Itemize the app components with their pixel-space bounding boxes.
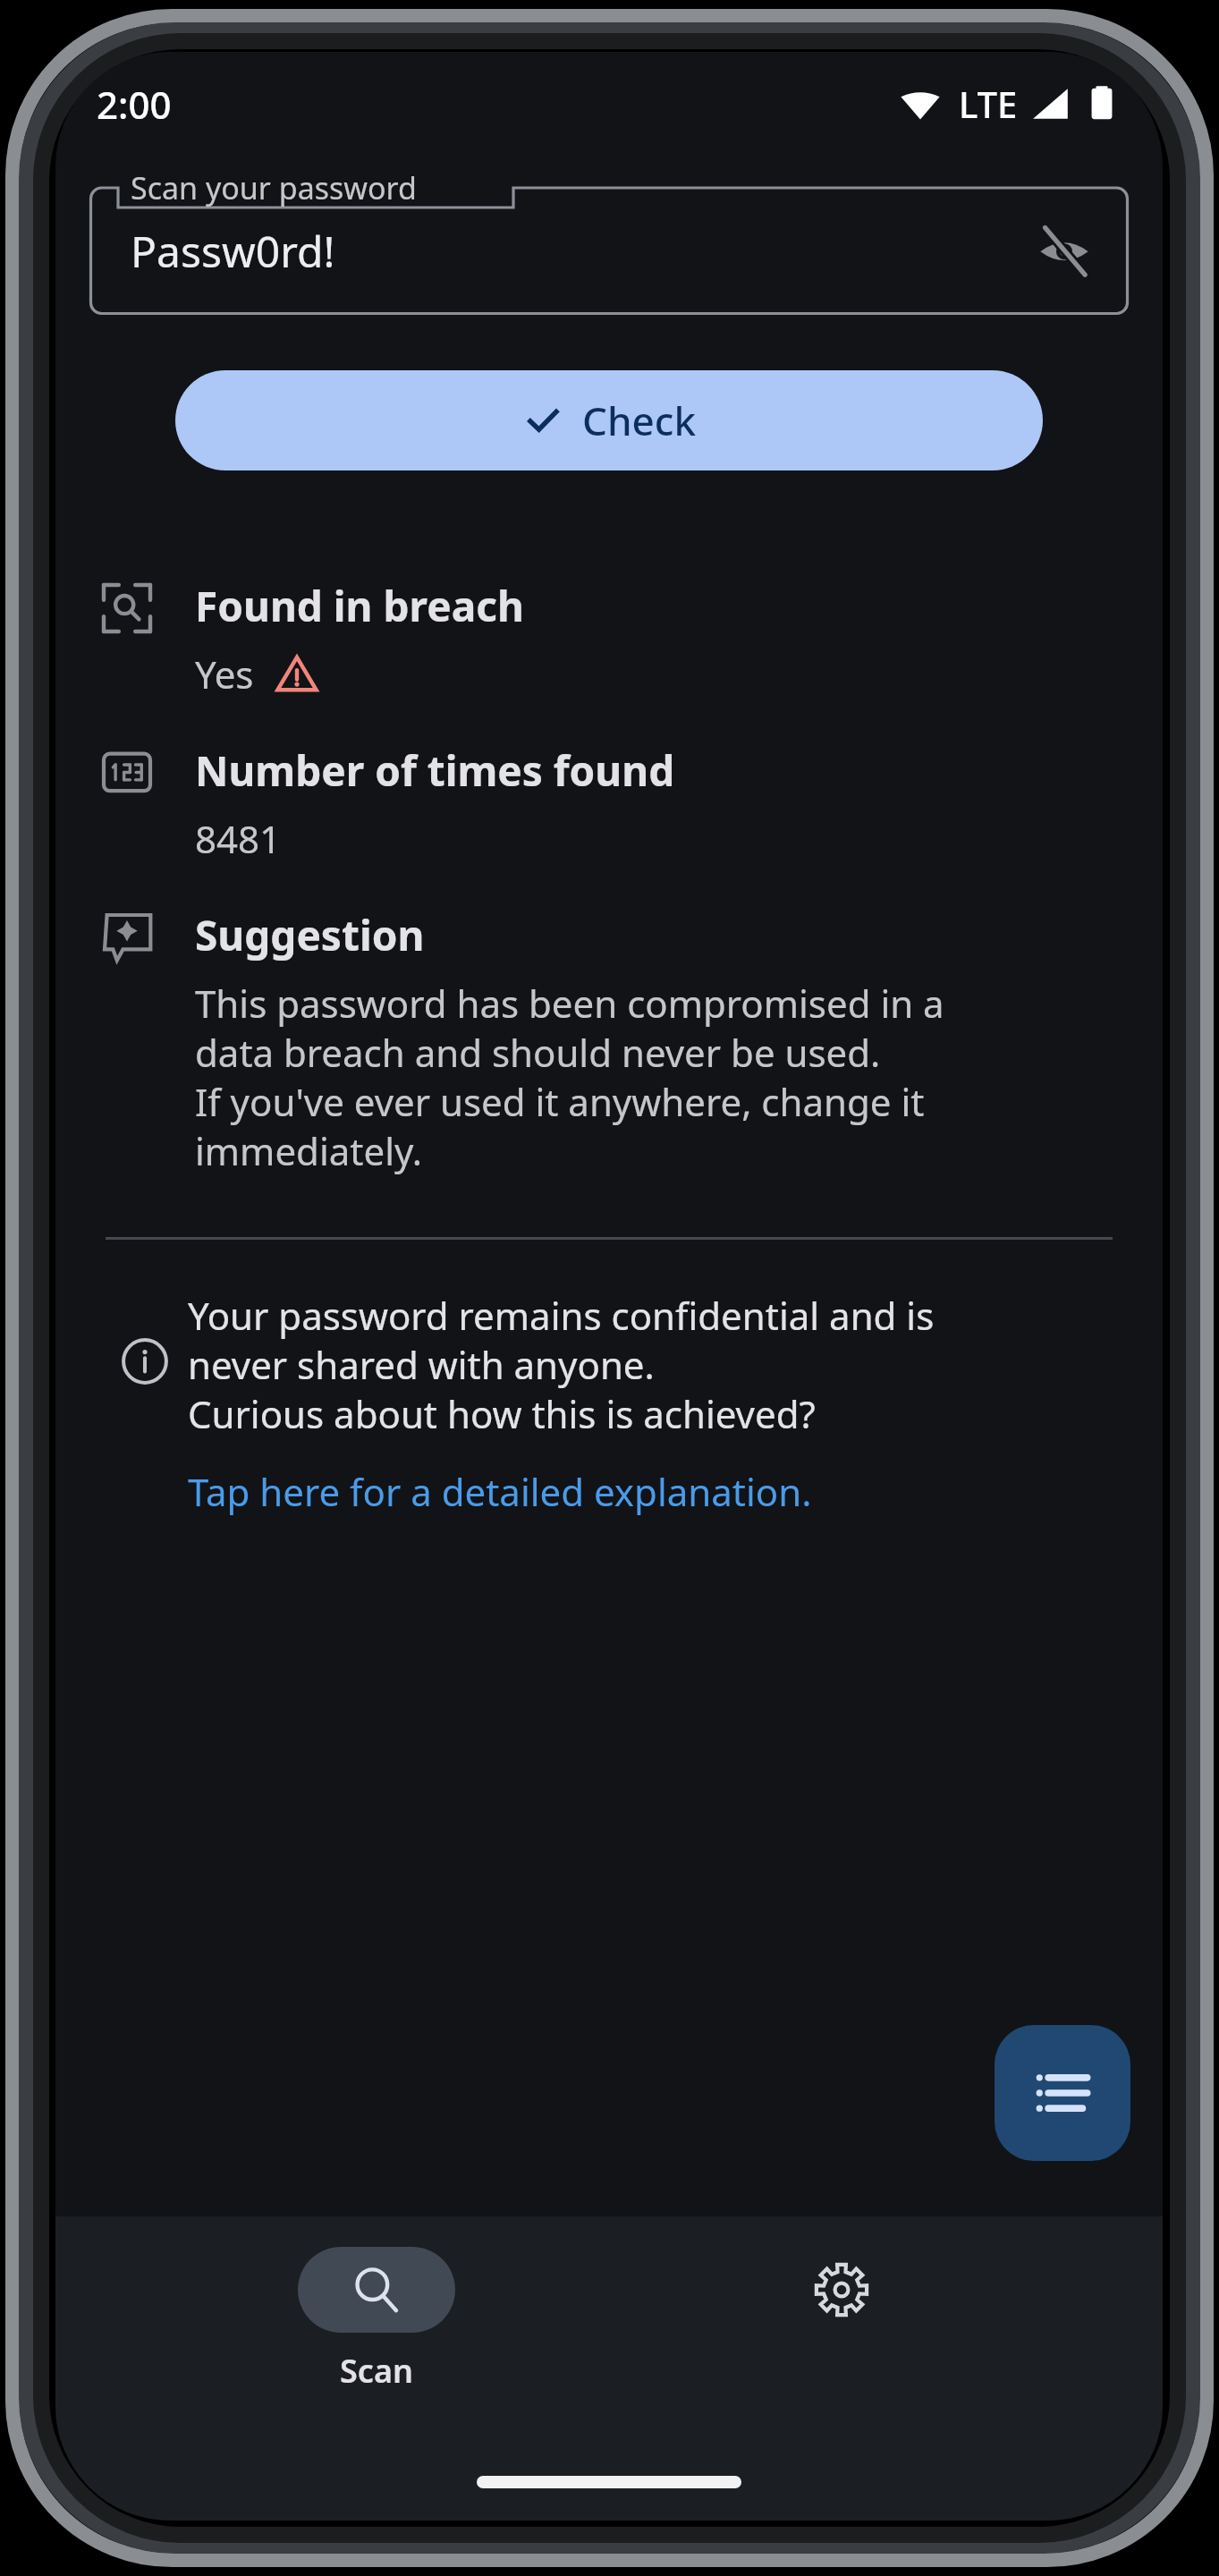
button[interactable]: Check [175,370,1043,470]
staticText: Yes [195,648,254,699]
staticText: Suggestion [195,907,425,963]
staticText: 2:00 [97,79,172,130]
staticText: 8481 [195,813,282,864]
staticText: Number of times found [195,742,675,799]
staticText: Scan your password [131,167,417,208]
staticText: Check [582,394,696,447]
button[interactable]: Tap here for a detailed explanation. [188,1466,812,1517]
staticText: Found in breach [195,578,524,634]
staticText: Passw0rd! [131,222,335,280]
button[interactable]: Hide password [1021,208,1107,293]
staticText: Your password remains confidential and i… [188,1290,935,1439]
staticText: This password has been compromised in a … [195,978,944,1176]
button[interactable]: Settings [698,2247,985,2333]
button[interactable]: Scan [233,2247,520,2393]
staticText: LTE [959,80,1018,128]
button[interactable]: Show history list [995,2025,1130,2161]
staticText: Scan [340,2349,413,2393]
staticText: Tap here for a detailed explanation. [188,1466,812,1517]
